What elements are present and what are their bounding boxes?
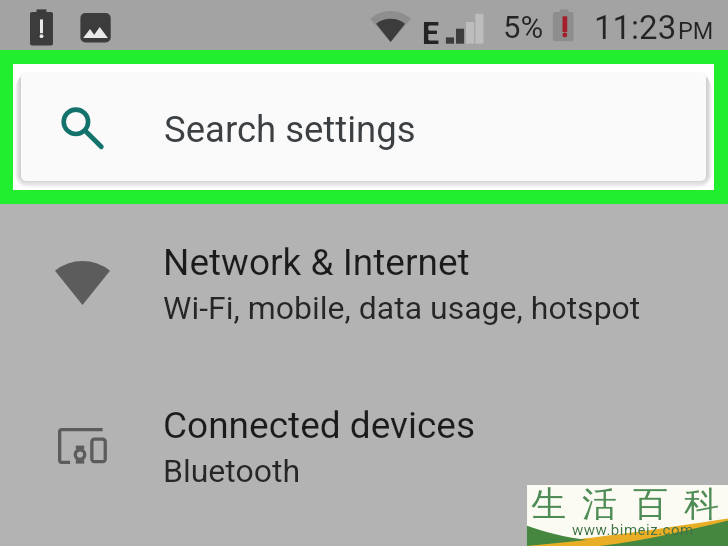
staticText: www.bimeiz.com: [572, 521, 694, 539]
other: Search: [60, 106, 108, 154]
staticText: Network & Internet: [163, 241, 470, 284]
staticText: 11:23: [594, 8, 677, 47]
staticText: Connected devices: [163, 404, 476, 447]
staticText: 5%: [503, 9, 544, 45]
staticText: Wi-Fi, mobile, data usage, hotspot: [163, 289, 641, 327]
staticText: 科: [684, 482, 719, 526]
button[interactable]: Connected devices: [0, 385, 728, 546]
staticText: Search settings: [164, 108, 416, 151]
button[interactable]: Network & Internet: [0, 222, 728, 385]
staticText: 生: [531, 482, 566, 526]
button[interactable]: Search: [21, 72, 706, 181]
staticText: 百: [633, 482, 668, 526]
staticText: PM: [678, 17, 714, 45]
staticText: Bluetooth: [163, 452, 301, 490]
staticText: E: [422, 16, 440, 52]
staticText: 活: [582, 482, 617, 526]
